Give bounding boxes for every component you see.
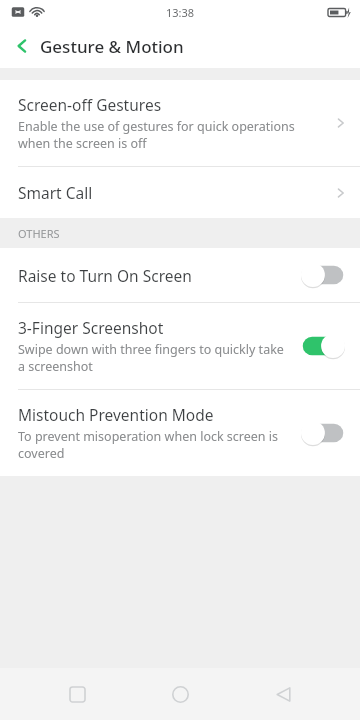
staticText: OTHERS (18, 226, 60, 241)
button[interactable]: Mistouch Prevention Mode (0, 390, 360, 476)
button[interactable]: Toggle off (300, 262, 346, 288)
button[interactable]: Recents (51, 668, 103, 720)
button[interactable]: Back (257, 668, 309, 720)
button[interactable]: Back (0, 24, 44, 68)
staticText: Smart Call (18, 182, 336, 203)
staticText: 13:38 (166, 5, 195, 20)
staticText: Screen-off Gestures (18, 94, 162, 115)
staticText: To prevent misoperation when lock screen… (18, 428, 290, 462)
button[interactable]: Home (154, 668, 206, 720)
button[interactable]: Toggle on (300, 333, 346, 359)
staticText: Gesture & Motion (40, 35, 184, 58)
button[interactable]: 3-Finger Screenshot (0, 303, 360, 389)
staticText: 3-Finger Screenshot (18, 317, 164, 338)
button[interactable]: Raise to Turn On Screen (0, 248, 360, 302)
staticText: Swipe down with three fingers to quickly… (18, 341, 290, 375)
staticText: Raise to Turn On Screen (18, 265, 192, 286)
staticText: Enable the use of gestures for quick ope… (18, 118, 328, 152)
button[interactable]: Toggle off (300, 420, 346, 446)
staticText: Mistouch Prevention Mode (18, 404, 214, 425)
button[interactable]: Screen-off Gestures (0, 80, 360, 166)
button[interactable]: Smart Call (0, 167, 360, 218)
